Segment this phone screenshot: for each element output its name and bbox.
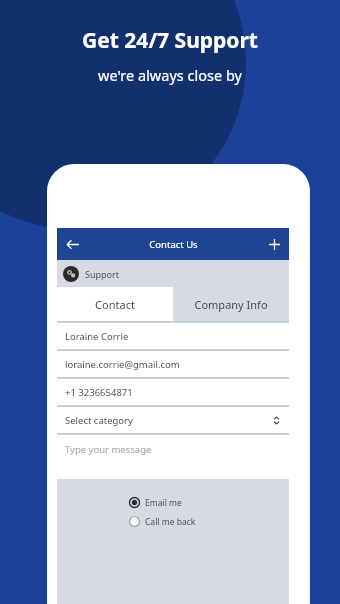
staticText: Contact Us	[149, 238, 198, 251]
button[interactable]: Select category	[57, 407, 289, 433]
staticText: Select category	[65, 414, 272, 427]
staticText: +1 3236654871	[65, 386, 133, 399]
staticText: Support	[85, 268, 119, 280]
button[interactable]: Support	[57, 260, 289, 287]
button[interactable]: loraine.corrie@gmail.com	[57, 351, 289, 377]
button[interactable]: Company Info	[173, 287, 289, 321]
staticText: we're always close by	[0, 65, 340, 85]
button[interactable]: Back	[57, 229, 87, 259]
button[interactable]: Type your message	[57, 435, 289, 479]
button[interactable]: Call me back	[129, 514, 217, 529]
staticText: loraine.corrie@gmail.com	[65, 358, 180, 371]
staticText: Get 24/7 Support	[0, 26, 340, 55]
button[interactable]: Add	[259, 229, 289, 259]
staticText: Contact	[95, 297, 135, 312]
staticText: Call me back	[145, 516, 196, 528]
button[interactable]: Loraine Corrie	[57, 323, 289, 349]
staticText: Loraine Corrie	[65, 330, 129, 343]
button[interactable]: Email me	[129, 495, 217, 510]
staticText: Company Info	[194, 297, 268, 312]
button[interactable]: +1 3236654871	[57, 379, 289, 405]
button[interactable]: Contact	[57, 287, 173, 321]
staticText: Type your message	[65, 443, 152, 456]
staticText: Email me	[145, 497, 182, 509]
